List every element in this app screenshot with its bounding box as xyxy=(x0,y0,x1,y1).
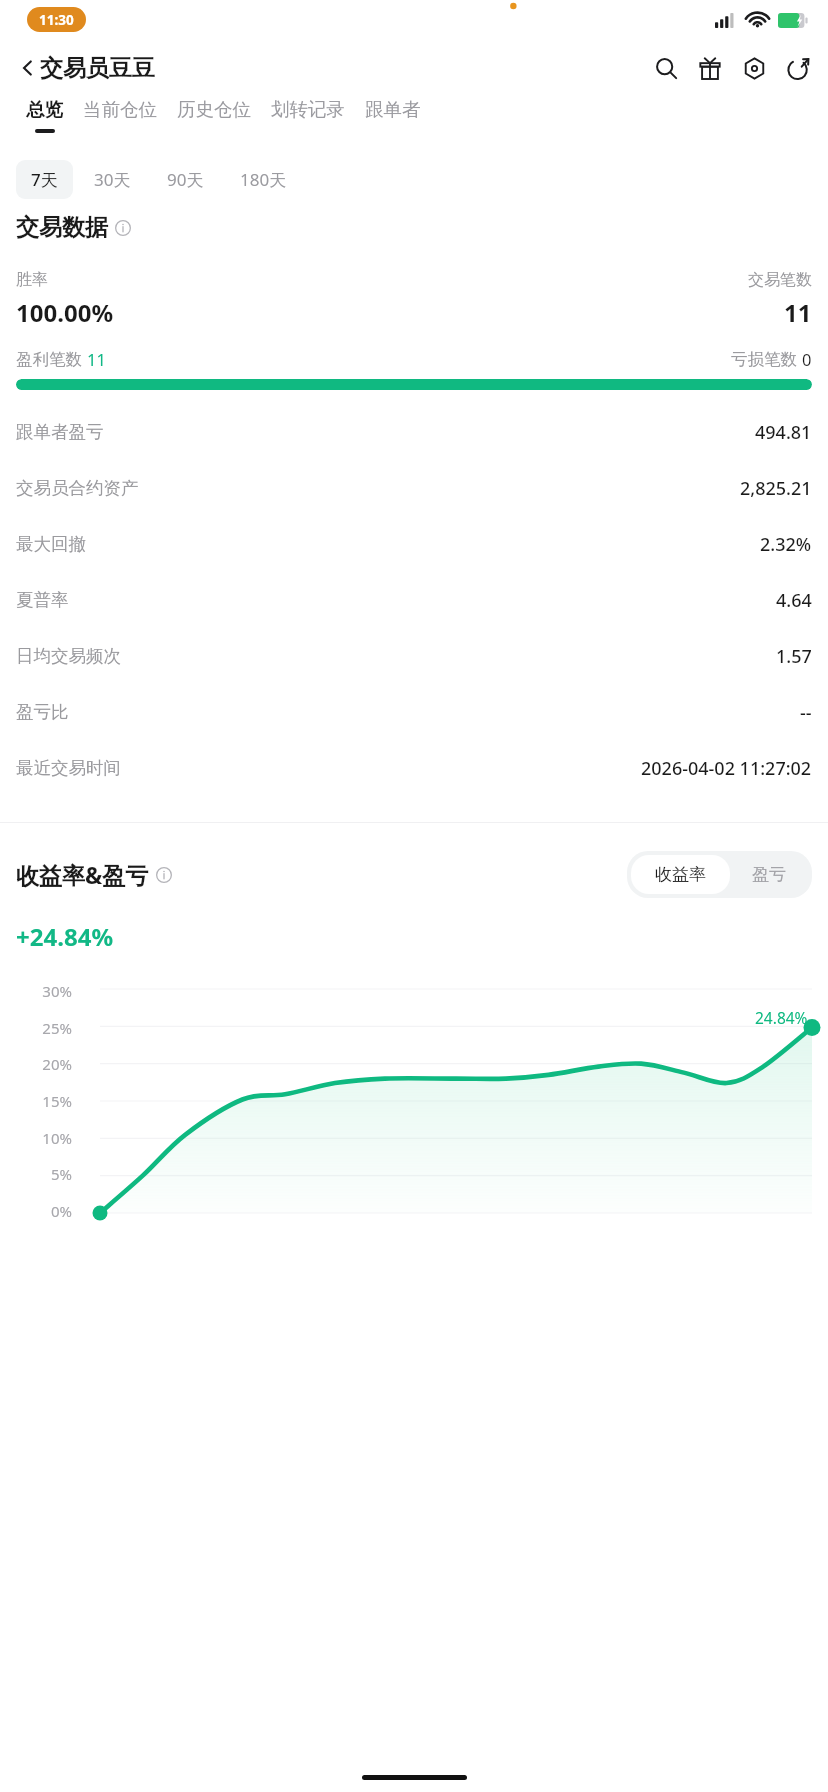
staticText: 盈利笔数 xyxy=(16,347,87,370)
button[interactable]: 分享 xyxy=(776,46,820,90)
staticText: 交易笔数 xyxy=(748,270,812,290)
staticText: 24.84% xyxy=(755,1007,808,1028)
staticText: 100.00% xyxy=(16,296,114,329)
staticText: 总览 xyxy=(26,98,63,121)
staticText: 180天 xyxy=(240,168,287,191)
staticText: 25% xyxy=(16,1018,72,1038)
staticText: 4.64 xyxy=(776,588,812,613)
staticText: 0% xyxy=(16,1201,72,1221)
staticText: 5% xyxy=(16,1164,72,1184)
button[interactable]: 搜索 xyxy=(644,46,688,90)
staticText: 历史仓位 xyxy=(177,98,251,121)
staticText: 盈亏 xyxy=(752,864,786,885)
staticText: 1.57 xyxy=(776,644,812,669)
staticText: 胜率 xyxy=(16,270,48,290)
button[interactable]: 历史仓位 xyxy=(167,98,261,129)
button[interactable]: 盈亏 xyxy=(730,855,808,894)
button[interactable]: 礼物 xyxy=(688,46,732,90)
staticText: 11:30 xyxy=(39,11,74,29)
staticText: 收益率 xyxy=(655,864,706,885)
staticText: 15% xyxy=(16,1091,72,1111)
staticText: 0 xyxy=(802,348,812,370)
staticText: 跟单者盈亏 xyxy=(16,421,104,443)
button[interactable]: 返回 xyxy=(6,46,50,90)
staticText: 最大回撤 xyxy=(16,533,86,555)
staticText: 最近交易时间 xyxy=(16,757,121,779)
staticText: 交易数据 xyxy=(16,213,108,242)
button[interactable]: 划转记录 xyxy=(261,98,355,129)
staticText: 11 xyxy=(87,348,106,370)
button[interactable]: 90天 xyxy=(152,160,219,199)
staticText: 90天 xyxy=(167,168,204,191)
staticText: 494.81 xyxy=(755,420,812,445)
staticText: 日均交易频次 xyxy=(16,645,121,667)
button[interactable]: 180天 xyxy=(225,160,302,199)
staticText: 夏普率 xyxy=(16,589,69,611)
staticText: 30天 xyxy=(94,168,131,191)
staticText: 30% xyxy=(16,981,72,1001)
button[interactable]: 7天 xyxy=(16,160,73,199)
staticText: 10% xyxy=(16,1128,72,1148)
staticText: 收益率&盈亏 xyxy=(16,859,149,890)
staticText: 跟单者 xyxy=(365,98,421,121)
button[interactable]: 当前仓位 xyxy=(73,98,167,129)
staticText: 2.32% xyxy=(760,532,812,557)
staticText: 7天 xyxy=(31,168,58,191)
staticText: 2026-04-02 11:27:02 xyxy=(641,756,812,781)
button[interactable]: 收益率 xyxy=(631,855,730,894)
staticText: 当前仓位 xyxy=(83,98,157,121)
staticText: 划转记录 xyxy=(271,98,345,121)
staticText: 20% xyxy=(16,1054,72,1074)
staticText: 2,825.21 xyxy=(740,476,812,501)
staticText: -- xyxy=(800,700,812,725)
staticText: 盈亏比 xyxy=(16,701,69,723)
button[interactable]: 设置 xyxy=(732,46,776,90)
staticText: +24.84% xyxy=(16,920,114,953)
button[interactable]: 总览 xyxy=(16,98,73,133)
staticText: 交易员豆豆 xyxy=(40,54,155,83)
staticText: 亏损笔数 xyxy=(731,347,802,370)
button[interactable]: 跟单者 xyxy=(355,98,431,129)
staticText: 11 xyxy=(784,296,812,329)
button[interactable]: 30天 xyxy=(79,160,146,199)
staticText: 交易员合约资产 xyxy=(16,477,139,499)
